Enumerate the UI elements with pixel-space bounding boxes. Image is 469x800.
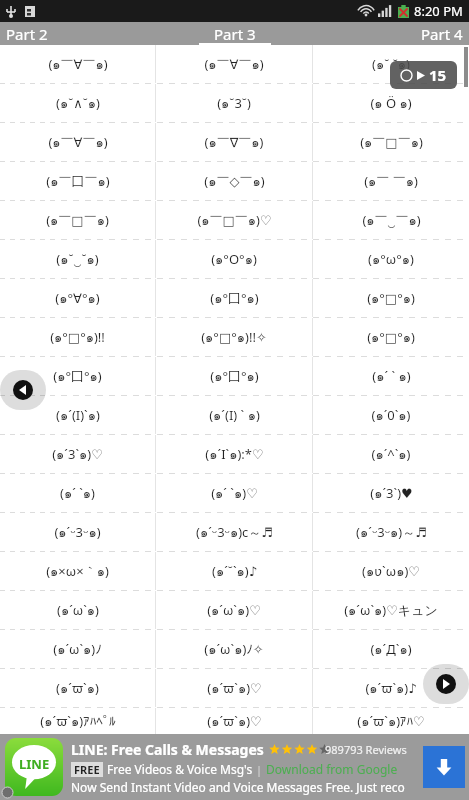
staticText: (๑´ `๑)♡ (211, 483, 258, 504)
staticText: (๑´ω`๑) (57, 600, 99, 621)
staticText: (๑°□°๑) (367, 327, 415, 348)
staticText: (๑°ω°๑) (368, 249, 414, 270)
button[interactable]: (๑´ω`๑)ﾉ (0, 630, 155, 668)
button[interactable]: Part 2 (0, 22, 157, 45)
staticText: (๑￣∇￣๑) (204, 132, 264, 153)
staticText: (๑°O°๑) (211, 249, 257, 270)
staticText: (๑´ᵕ3ᵕ๑)c～♬ (196, 522, 273, 543)
button[interactable]: (๑°O°๑) (156, 240, 312, 278)
button[interactable]: (๑´I`๑):*♡ (156, 435, 312, 473)
staticText: (๑´ϖ`๑)ｱﾊﾍﾟﾙ (40, 711, 116, 732)
staticText: (๑°囗°๑) (53, 366, 102, 387)
button[interactable]: (๑´ ` ๑) (313, 357, 469, 395)
button[interactable]: (๑´ϖ`๑)ｱﾊ♡ (313, 708, 469, 734)
button[interactable]: (๑￣□￣๑) (313, 123, 469, 161)
staticText: 8:20 PM (414, 2, 463, 20)
button[interactable]: (๑˘ ˘๑) (313, 45, 469, 83)
staticText: 989793 Reviews (325, 742, 407, 757)
button[interactable]: (๑°□°๑)!!✧ (156, 318, 312, 356)
staticText: FREE (74, 762, 100, 777)
button[interactable]: (๑￣∀￣๑) (0, 45, 155, 83)
button[interactable]: (๑×ω×｀๑) (0, 552, 155, 590)
button[interactable]: (๑°□°๑)!! (0, 318, 155, 356)
staticText: (๑˘3˘) (217, 93, 251, 114)
button[interactable]: (๑˘3˘) (156, 84, 312, 122)
staticText: (๑´ᵕ3ᵕ๑) (54, 522, 101, 543)
staticText: Part 4 (421, 24, 463, 44)
staticText: (๑￣◇￣๑) (204, 171, 265, 192)
button[interactable]: Part 4 (313, 22, 469, 45)
button[interactable]: (๑´˘`๑)♪ (156, 552, 312, 590)
button[interactable]: (๑´ `๑)♡ (156, 474, 312, 512)
button[interactable]: (๑´ `๑) (0, 474, 155, 512)
staticText: (๑´ ` ๑) (372, 366, 411, 387)
button[interactable]: (๑￣‿￣๑) (313, 201, 469, 239)
button[interactable]: (๑￣∀￣๑) (0, 123, 155, 161)
staticText: (๑´I`๑):*♡ (205, 444, 264, 465)
staticText: (๑°□°๑)!! (50, 327, 105, 348)
button[interactable]: (๑´ϖ`๑)♡ (156, 708, 312, 734)
staticText: (๑°□°๑) (367, 288, 415, 309)
staticText: (๑°囗°๑) (210, 366, 259, 387)
button[interactable]: (๑￣◇￣๑) (156, 162, 312, 200)
button[interactable]: (๑´3`)♥ (313, 474, 469, 512)
staticText: Free Videos & Voice Msg's (107, 761, 253, 777)
staticText: (๑￣ ￣๑) (364, 171, 418, 192)
button[interactable]: (๑´0`๑) (313, 396, 469, 434)
staticText: (๑´ϖ`๑) (56, 678, 99, 699)
button[interactable]: (๑´^`๑) (313, 435, 469, 473)
staticText: (๑°囗°๑) (210, 288, 259, 309)
button[interactable]: (๑ʋ`ω๑)♡ (313, 552, 469, 590)
button[interactable]: Part 3 (157, 22, 313, 45)
button[interactable]: (๑°□°๑) (313, 318, 469, 356)
button[interactable]: (๑´(I)`๑) (0, 396, 155, 434)
button[interactable]: (๑°囗°๑) (0, 357, 155, 395)
button[interactable]: (๑￣∀￣๑) (156, 45, 312, 83)
button[interactable]: (๑´ϖ`๑)ｱﾊﾍﾟﾙ (0, 708, 155, 734)
staticText: Part 3 (214, 24, 256, 44)
button[interactable]: (๑´ω`๑)♡ (156, 591, 312, 629)
staticText: (๑´ω`๑)ﾉ (53, 639, 102, 660)
button[interactable]: (๑´3`๑)♡ (0, 435, 155, 473)
button[interactable]: (๑°∀°๑) (0, 279, 155, 317)
button[interactable]: (๑°囗°๑) (156, 357, 312, 395)
staticText: (๑ Ö ๑) (370, 93, 412, 114)
button[interactable]: (๑´ω`๑)♡キュン (313, 591, 469, 629)
button[interactable]: Download (423, 746, 465, 788)
staticText: (๑´ϖ`๑)♡ (207, 711, 262, 732)
button[interactable]: (๑´Д`๑) (313, 630, 469, 668)
staticText: | (256, 762, 263, 777)
staticText: (๑￣‿￣๑) (362, 210, 421, 231)
button[interactable]: Previous page (0, 370, 46, 410)
button[interactable]: (๑￣□￣๑)♡ (156, 201, 312, 239)
button[interactable]: (๑￣∇￣๑) (156, 123, 312, 161)
button[interactable]: Next page (423, 664, 469, 704)
staticText: (๑￣∀￣๑) (48, 54, 108, 75)
button[interactable]: (๑´ᵕ3ᵕ๑) (0, 513, 155, 551)
button[interactable]: (๑￣ ￣๑) (313, 162, 469, 200)
button[interactable]: (๑´ᵕ3ᵕ๑)c～♬ (156, 513, 312, 551)
button[interactable]: (๑´ϖ`๑)♪ (313, 669, 469, 707)
button[interactable]: (๑´ω`๑) (0, 591, 155, 629)
staticText: (๑´ω`๑)ﾉ✧ (204, 639, 264, 660)
button[interactable]: (๑￣□￣๑) (0, 201, 155, 239)
button[interactable]: (๑ Ö ๑) (313, 84, 469, 122)
staticText: (๑￣□￣๑) (46, 210, 109, 231)
button[interactable]: (๑˘‿˘๑) (0, 240, 155, 278)
staticText: (๑´Д`๑) (370, 639, 412, 660)
staticText: (๑´(I)`๑) (56, 405, 100, 426)
button[interactable]: (๑˘∧˘๑) (0, 84, 155, 122)
button[interactable]: (๑°囗°๑) (156, 279, 312, 317)
button[interactable]: (๑´ϖ`๑) (0, 669, 155, 707)
button[interactable]: (๑°□°๑) (313, 279, 469, 317)
staticText: (๑´ω`๑)♡キュン (344, 600, 438, 621)
button[interactable]: (๑´ϖ`๑)♡ (156, 669, 312, 707)
staticText: (๑￣∀￣๑) (48, 132, 108, 153)
button[interactable]: 15 (390, 61, 457, 89)
button[interactable]: (๑´ω`๑)ﾉ✧ (156, 630, 312, 668)
button[interactable]: LINE (0, 734, 469, 800)
button[interactable]: (๑°ω°๑) (313, 240, 469, 278)
button[interactable]: (๑´(I) ` ๑) (156, 396, 312, 434)
button[interactable]: (๑´ᵕ3ᵕ๑)～♬ (313, 513, 469, 551)
button[interactable]: (๑￣囗￣๑) (0, 162, 155, 200)
